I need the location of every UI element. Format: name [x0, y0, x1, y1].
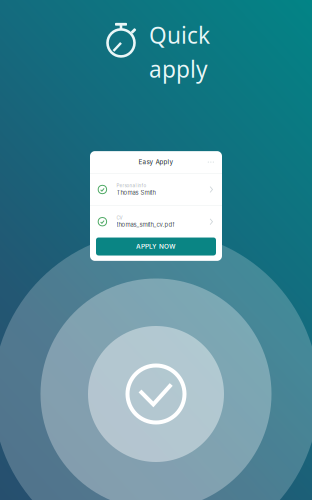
staticText: Quick	[149, 20, 210, 50]
button[interactable]: CV	[90, 206, 222, 237]
staticText: CV	[117, 215, 123, 220]
staticText: thomas_smith_cv.pdf	[117, 221, 175, 228]
button[interactable]: APPLY NOW	[96, 237, 216, 255]
staticText: Thomas Smith	[117, 189, 156, 196]
staticText: Personal info	[117, 183, 147, 188]
staticText: Easy Apply	[138, 158, 173, 166]
staticText: apply	[149, 54, 208, 84]
staticText: APPLY NOW	[136, 243, 176, 250]
button[interactable]: Personal info	[90, 174, 222, 205]
